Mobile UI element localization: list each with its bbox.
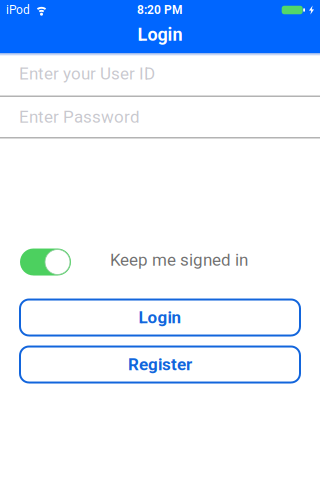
- button[interactable]: Enter your User ID: [0, 56, 320, 95]
- staticText: Login: [138, 307, 181, 327]
- button[interactable]: Register: [19, 345, 301, 383]
- button[interactable]: Keep me signed in: [20, 248, 71, 275]
- button[interactable]: Login: [19, 298, 301, 336]
- staticText: Enter Password: [19, 107, 140, 127]
- staticText: iPod: [6, 3, 30, 17]
- staticText: 8:20 PM: [137, 3, 183, 17]
- staticText: Keep me signed in: [110, 250, 248, 270]
- staticText: Login: [137, 24, 182, 45]
- staticText: Enter your User ID: [19, 64, 155, 84]
- staticText: Register: [128, 354, 192, 374]
- button[interactable]: Enter Password: [0, 97, 320, 137]
